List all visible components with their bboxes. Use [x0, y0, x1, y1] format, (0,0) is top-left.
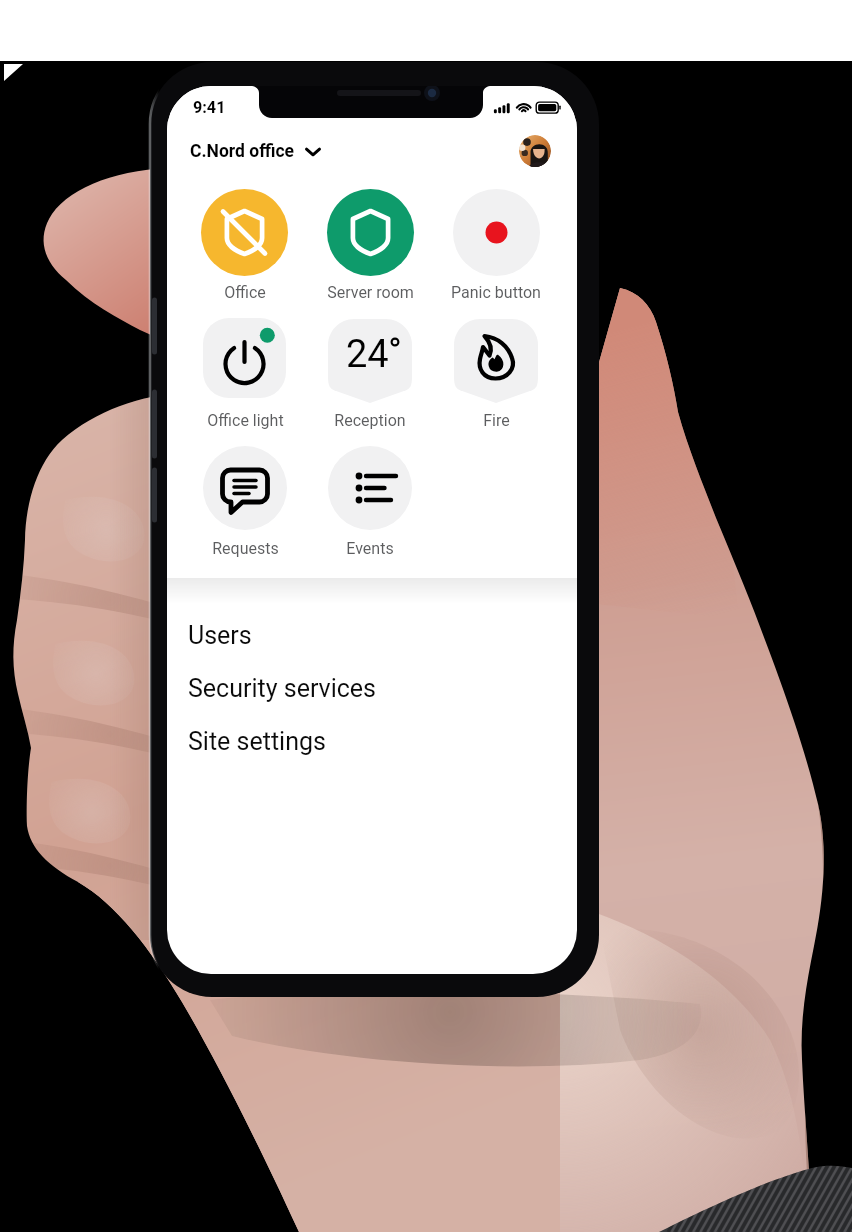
button[interactable]: Users — [167, 613, 577, 657]
staticText: 24 — [346, 332, 389, 377]
staticText: 9:41 — [193, 98, 226, 117]
staticText: Panic button — [451, 283, 541, 302]
button[interactable]: Requests — [203, 446, 287, 530]
button[interactable]: Office — [201, 189, 288, 276]
staticText: Office — [224, 283, 266, 302]
staticText: Events — [346, 539, 394, 558]
staticText: Site settings — [188, 727, 326, 756]
button[interactable]: Office light — [203, 318, 286, 398]
button[interactable]: Reception — [328, 319, 412, 403]
staticText: Server room — [327, 283, 414, 302]
button[interactable]: Panic button — [453, 189, 540, 276]
button[interactable]: C.Nord office — [190, 141, 321, 162]
staticText: Requests — [212, 539, 279, 558]
button[interactable]: Server room — [327, 189, 414, 276]
button[interactable]: Security services — [167, 666, 577, 710]
staticText: Reception — [334, 411, 406, 430]
staticText: Fire — [483, 411, 510, 430]
button[interactable]: Fire — [454, 319, 538, 403]
staticText: Office light — [207, 411, 284, 430]
button[interactable]: Events — [328, 446, 412, 530]
button[interactable]: Site settings — [167, 719, 577, 763]
button[interactable]: Profile — [519, 135, 551, 167]
staticText: Security services — [188, 674, 377, 703]
staticText: Users — [188, 621, 252, 650]
staticText: C.Nord office — [190, 141, 295, 162]
